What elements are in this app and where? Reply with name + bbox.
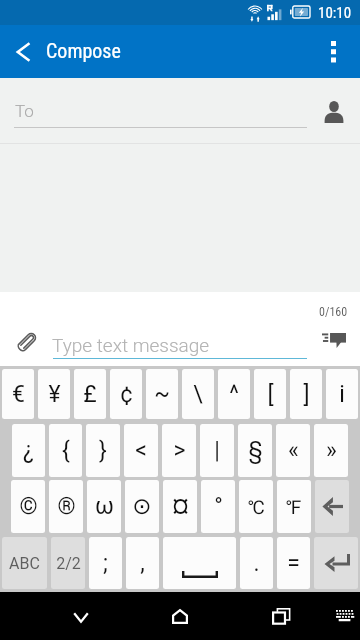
staticText: €: [12, 381, 25, 408]
staticText: ¢: [120, 381, 133, 408]
button[interactable]: ⊙: [125, 480, 159, 533]
button[interactable]: >: [162, 424, 196, 477]
staticText: >: [173, 437, 186, 464]
button[interactable]: <: [124, 424, 158, 477]
button[interactable]: ω: [87, 480, 121, 533]
staticText: .: [253, 550, 260, 577]
staticText: |: [214, 437, 220, 464]
button[interactable]: .: [240, 537, 273, 589]
staticText: ®: [57, 493, 76, 520]
staticText: ℃: [248, 496, 265, 518]
staticText: »: [326, 437, 337, 464]
button[interactable]: ©: [11, 480, 45, 533]
button[interactable]: Choose contact: [314, 92, 354, 132]
staticText: i: [339, 381, 345, 408]
button[interactable]: ABC: [2, 537, 47, 589]
button[interactable]: [: [254, 369, 286, 419]
staticText: To: [15, 101, 34, 121]
staticText: £: [83, 381, 97, 408]
staticText: ]: [303, 381, 310, 408]
button[interactable]: Hide keyboard: [321, 592, 360, 640]
button[interactable]: More options: [314, 25, 360, 78]
staticText: ;: [103, 550, 108, 577]
staticText: «: [288, 437, 299, 464]
button[interactable]: ~: [146, 369, 178, 419]
button[interactable]: ;: [89, 537, 122, 589]
staticText: ℉: [286, 496, 302, 518]
staticText: ~: [154, 381, 170, 408]
staticText: Type text message: [52, 334, 210, 356]
button[interactable]: ℃: [239, 480, 273, 533]
button[interactable]: \: [182, 369, 214, 419]
button[interactable]: ℉: [277, 480, 311, 533]
staticText: ,: [140, 550, 145, 577]
button[interactable]: Delete: [315, 480, 349, 533]
staticText: \: [193, 381, 203, 408]
button[interactable]: ¿: [12, 424, 45, 477]
button[interactable]: Attach: [7, 322, 47, 362]
staticText: Compose: [46, 39, 121, 62]
button[interactable]: Home: [156, 592, 204, 640]
button[interactable]: °: [201, 480, 235, 533]
staticText: [: [267, 381, 274, 408]
button[interactable]: |: [200, 424, 234, 477]
button[interactable]: Enter: [314, 537, 358, 589]
button[interactable]: £: [74, 369, 106, 419]
button[interactable]: ^: [218, 369, 250, 419]
button[interactable]: {: [49, 424, 82, 477]
button[interactable]: »: [314, 424, 348, 477]
staticText: ¿: [23, 437, 34, 464]
button[interactable]: ¢: [110, 369, 142, 419]
staticText: ω: [95, 493, 114, 520]
button[interactable]: §: [238, 424, 272, 477]
button[interactable]: Space: [163, 537, 236, 589]
staticText: 0/160: [319, 305, 348, 319]
button[interactable]: «: [276, 424, 310, 477]
staticText: °: [214, 493, 223, 520]
staticText: 10:10: [318, 4, 352, 22]
staticText: =: [287, 550, 300, 577]
staticText: ¤: [172, 493, 189, 520]
button[interactable]: Back: [57, 592, 105, 640]
button[interactable]: ®: [49, 480, 83, 533]
staticText: }: [99, 437, 107, 464]
staticText: 2/2: [56, 554, 81, 573]
button[interactable]: Navigate up: [0, 25, 46, 78]
button[interactable]: ¥: [38, 369, 70, 419]
button[interactable]: ,: [126, 537, 159, 589]
button[interactable]: i: [326, 369, 358, 419]
button[interactable]: =: [277, 537, 310, 589]
button[interactable]: Send message: [313, 322, 355, 358]
button[interactable]: }: [86, 424, 120, 477]
staticText: ⊙: [132, 493, 152, 520]
staticText: ©: [19, 493, 38, 520]
staticText: <: [135, 437, 147, 464]
staticText: ABC: [9, 554, 40, 573]
button[interactable]: ¤: [163, 480, 197, 533]
button[interactable]: ]: [290, 369, 322, 419]
staticText: {: [62, 437, 70, 464]
button[interactable]: €: [2, 369, 34, 419]
staticText: §: [248, 437, 263, 464]
button[interactable]: Recent apps: [257, 592, 305, 640]
button[interactable]: 2/2: [51, 537, 85, 589]
staticText: ¥: [48, 381, 61, 408]
staticText: ^: [229, 381, 239, 408]
